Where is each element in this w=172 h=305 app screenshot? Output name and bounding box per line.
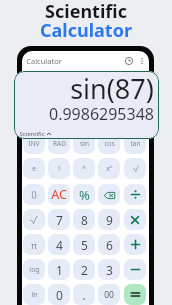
staticText: % bbox=[79, 186, 90, 204]
button[interactable]: Backspace bbox=[98, 184, 120, 205]
staticText: 9 bbox=[106, 212, 113, 228]
button[interactable]: () bbox=[23, 184, 45, 205]
staticText: 5 bbox=[81, 237, 88, 253]
staticText: 4 bbox=[56, 237, 63, 253]
button[interactable]: . bbox=[73, 284, 95, 305]
button[interactable]: History bbox=[123, 55, 134, 66]
other: Divide bbox=[131, 190, 140, 199]
button[interactable]: e bbox=[23, 158, 45, 179]
button[interactable]: 9 bbox=[98, 209, 120, 230]
staticText: Scientific bbox=[45, 0, 127, 24]
button[interactable]: Backspace bbox=[102, 188, 116, 202]
button[interactable]: ln bbox=[23, 284, 45, 305]
button[interactable]: cos bbox=[98, 133, 120, 154]
button[interactable]: Nth root bbox=[124, 158, 146, 179]
button[interactable]: 3 bbox=[98, 259, 120, 280]
staticText: 7 bbox=[56, 212, 63, 228]
staticText: AC bbox=[51, 186, 67, 203]
other: Multiply bbox=[131, 216, 139, 224]
button[interactable]: ! bbox=[48, 158, 70, 179]
staticText: π bbox=[31, 239, 37, 251]
button[interactable]: More options bbox=[137, 56, 147, 66]
other: Plus bbox=[131, 240, 140, 249]
button[interactable]: 1 bbox=[48, 259, 70, 280]
button[interactable]: 5 bbox=[73, 234, 95, 255]
staticText: 0.9986295348 bbox=[49, 103, 154, 125]
button[interactable]: ^ bbox=[73, 158, 95, 179]
staticText: ^ bbox=[82, 164, 86, 173]
button[interactable]: Square root bbox=[23, 209, 45, 230]
staticText: 2 bbox=[81, 262, 88, 278]
button[interactable]: 7 bbox=[48, 209, 70, 230]
staticText: log bbox=[29, 265, 40, 275]
button[interactable]: 8 bbox=[73, 209, 95, 230]
staticText: 1 bbox=[56, 262, 63, 278]
button[interactable]: INV bbox=[23, 133, 45, 154]
button[interactable]: Equals bbox=[124, 284, 146, 305]
staticText: 6 bbox=[106, 237, 113, 253]
button[interactable]: Minus bbox=[124, 259, 146, 280]
button[interactable]: Plus bbox=[124, 234, 146, 255]
button[interactable]: 4 bbox=[48, 234, 70, 255]
staticText: 00 bbox=[104, 289, 114, 301]
button[interactable]: RAD bbox=[48, 133, 70, 154]
staticText: cos bbox=[104, 139, 115, 148]
button[interactable]: 2 bbox=[73, 259, 95, 280]
button[interactable]: π bbox=[23, 234, 45, 255]
button[interactable]: x² bbox=[98, 158, 120, 179]
other: Square root bbox=[30, 216, 38, 224]
staticText: ln bbox=[31, 290, 38, 300]
button[interactable]: 0 bbox=[48, 284, 70, 305]
staticText: sin(87) bbox=[70, 71, 154, 107]
button[interactable]: Multiply bbox=[124, 209, 146, 230]
staticText: e bbox=[32, 164, 36, 173]
button[interactable]: Scientific bbox=[19, 130, 51, 138]
staticText: 8 bbox=[81, 212, 88, 228]
staticText: sin bbox=[80, 139, 89, 148]
staticText: RAD bbox=[53, 139, 66, 148]
staticText: () bbox=[31, 189, 37, 201]
other: Minus bbox=[131, 265, 140, 274]
button[interactable]: 6 bbox=[98, 234, 120, 255]
button[interactable]: sin bbox=[73, 133, 95, 154]
button[interactable]: 00 bbox=[98, 284, 120, 305]
button[interactable]: log bbox=[23, 259, 45, 280]
staticText: 0 bbox=[56, 287, 63, 303]
button[interactable]: Divide bbox=[124, 184, 146, 205]
staticText: Calculator bbox=[40, 18, 132, 43]
other: Equals bbox=[130, 289, 141, 300]
button[interactable]: tan bbox=[124, 133, 146, 154]
staticText: . bbox=[82, 287, 86, 303]
staticText: x² bbox=[106, 164, 112, 173]
staticText: Calculator bbox=[26, 56, 62, 66]
other: Nth root bbox=[132, 165, 139, 172]
staticText: INV bbox=[28, 139, 40, 148]
staticText: ! bbox=[58, 164, 60, 173]
button[interactable]: AC bbox=[48, 184, 70, 205]
button[interactable]: % bbox=[73, 184, 95, 205]
staticText: Scientific bbox=[19, 130, 45, 138]
staticText: 3 bbox=[106, 262, 113, 278]
staticText: tan bbox=[130, 139, 141, 148]
